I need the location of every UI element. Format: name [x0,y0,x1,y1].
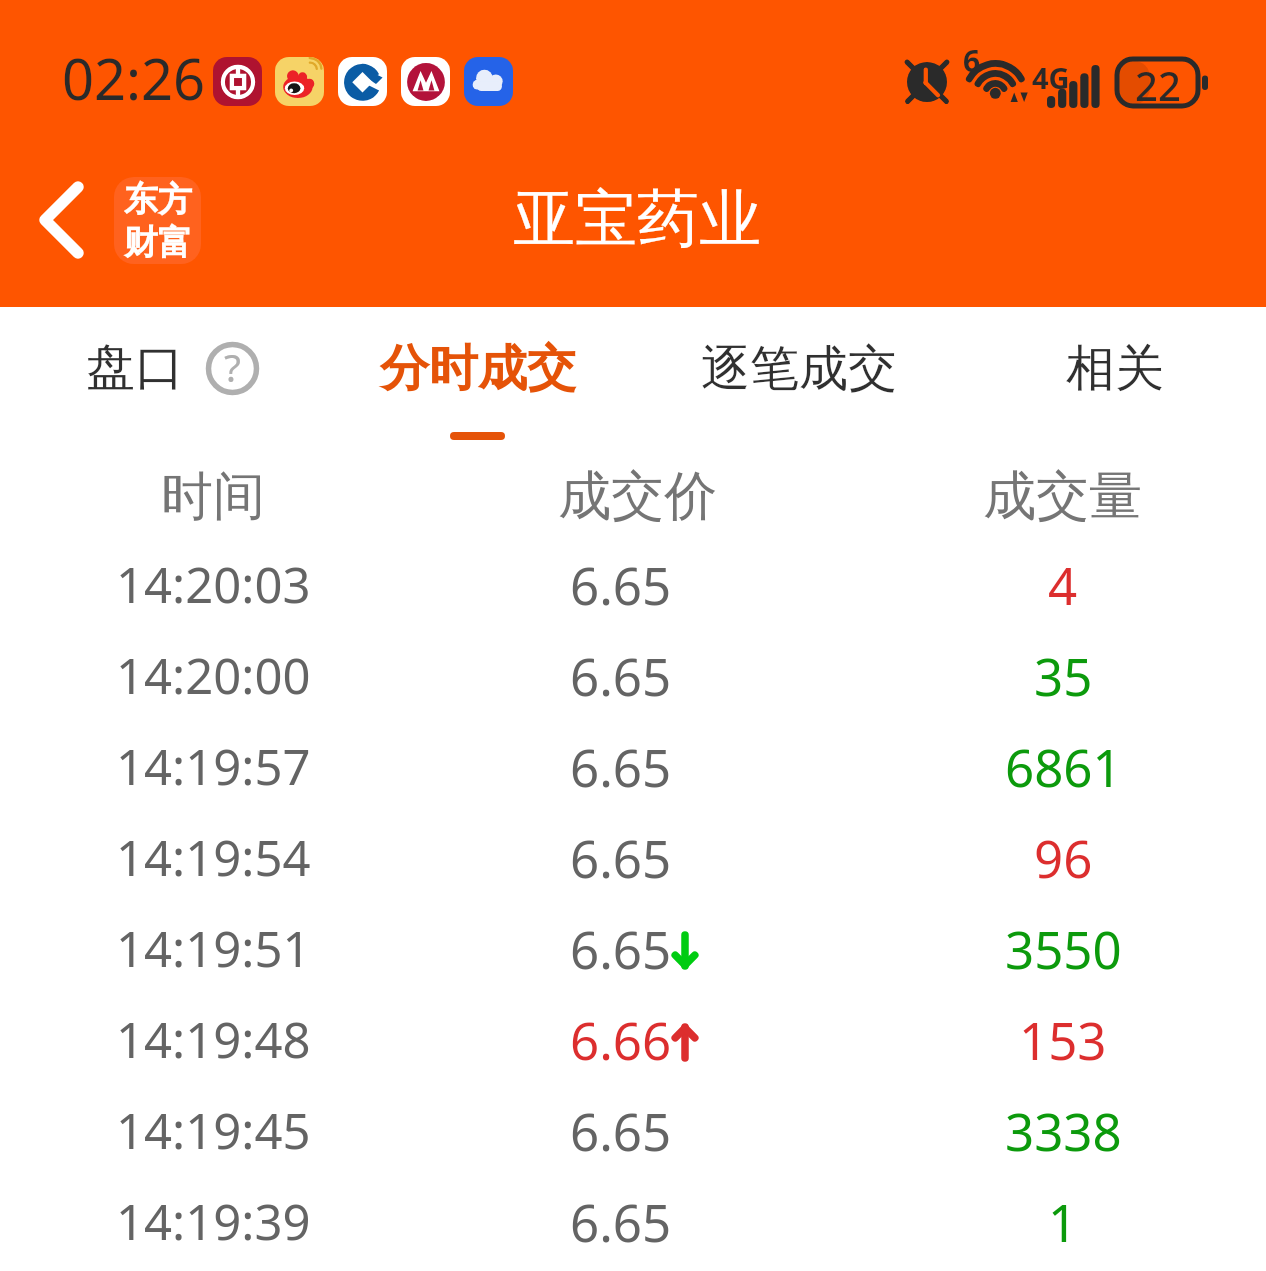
staticText: 14:20:03 [116,551,311,618]
button[interactable]: 14:19:57 [0,721,1266,812]
staticText: 6.65 [570,641,672,710]
staticText: 14:19:39 [116,1188,311,1255]
button[interactable]: Back [8,158,112,282]
staticText: 6.65 [570,1187,672,1256]
staticText: 22 [1135,58,1181,105]
button[interactable]: 14:20:03 [0,539,1266,630]
button[interactable]: 相关 [957,307,1266,448]
staticText: 6.65 [570,914,672,983]
button[interactable]: 14:19:54 [0,812,1266,903]
staticText: 财富 [124,221,192,264]
staticText: 02:26 [62,40,206,116]
staticText: 时间 [161,464,265,530]
other: Alarm [902,56,952,106]
button[interactable]: 14:19:45 [0,1085,1266,1176]
button[interactable]: 14:20:00 [0,630,1266,721]
staticText: 逐笔成交 [701,338,897,400]
staticText: 4G [1032,58,1070,97]
staticText: 6.65 [570,1096,672,1165]
button[interactable]: 盘口 [8,307,324,448]
staticText: 相关 [1066,338,1164,400]
staticText: 35 [1034,641,1093,710]
staticText: 亚宝药业 [513,180,761,258]
staticText: 东方 [124,178,192,221]
staticText: 成交量 [983,463,1142,530]
staticText: 14:19:54 [116,824,311,891]
button[interactable]: 分时成交 [324,307,640,448]
staticText: 4 [1048,550,1078,619]
button[interactable]: 14:19:51 [0,903,1266,994]
other: Battery 22 percent [1117,59,1209,106]
staticText: 6 [963,40,981,81]
staticText: 14:19:48 [116,1006,311,1073]
staticText: 1 [1048,1187,1078,1256]
staticText: 14:19:45 [116,1097,311,1164]
button[interactable]: 14:19:39 [0,1176,1266,1267]
staticText: 成交价 [558,463,717,530]
staticText: 3338 [1005,1096,1122,1165]
staticText: 6.66 [570,1005,672,1074]
staticText: 153 [1019,1005,1107,1074]
staticText: 盘口 [86,337,184,399]
staticText: 14:19:57 [116,733,311,800]
staticText: 6861 [1005,732,1122,801]
staticText: 3550 [1005,914,1122,983]
staticText: 6.65 [570,732,672,801]
button[interactable]: 14:19:48 [0,994,1266,1085]
staticText: 96 [1034,823,1093,892]
staticText: ? [224,340,241,393]
staticText: 6.65 [570,550,672,619]
staticText: 分时成交 [380,338,576,400]
button[interactable]: 逐笔成交 [640,307,957,448]
staticText: 14:19:51 [116,915,311,982]
staticText: 14:20:00 [116,642,311,709]
button[interactable]: 东方 [114,177,201,264]
staticText: 6.65 [570,823,672,892]
